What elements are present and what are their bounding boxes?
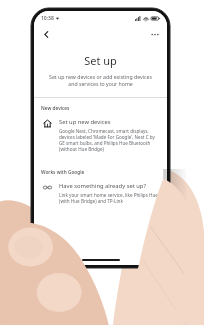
staticText: Google Nest, Chromecast, smart displays,… (59, 128, 158, 152)
staticText: New devices (41, 105, 70, 112)
button[interactable]: Have something already set up? (34, 178, 167, 208)
staticText: Set up new devices (59, 118, 111, 126)
staticText: Link your smart home service, like Phili… (59, 192, 158, 204)
staticText: Set up (84, 53, 117, 68)
staticText: Set up new devices or add existing devic… (44, 73, 157, 87)
staticText: 10:38 (41, 15, 54, 22)
staticText: Works with Google (41, 169, 85, 176)
button[interactable]: More options (147, 26, 163, 42)
staticText: Have something already set up? (59, 182, 146, 190)
button[interactable]: Set up new devices (34, 114, 167, 156)
button[interactable]: Back (38, 26, 54, 42)
